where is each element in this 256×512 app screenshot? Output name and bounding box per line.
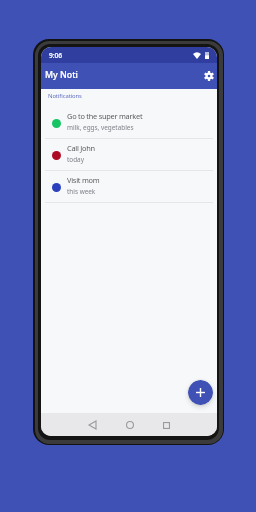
staticText: this week bbox=[67, 187, 96, 196]
button[interactable]: Go to the super market bbox=[41, 107, 217, 139]
staticText: Notifications bbox=[48, 92, 82, 100]
staticText: Call John bbox=[67, 143, 95, 153]
button[interactable]: Call John bbox=[41, 139, 217, 171]
staticText: My Noti bbox=[45, 69, 78, 81]
staticText: today bbox=[67, 155, 84, 164]
button[interactable]: Home bbox=[111, 415, 148, 435]
staticText: Visit mom bbox=[67, 175, 100, 185]
staticText: Go to the super market bbox=[67, 111, 143, 121]
staticText: 9:06 bbox=[49, 51, 63, 60]
button[interactable]: Recents bbox=[148, 415, 185, 435]
staticText: milk, eggs, vegetables bbox=[67, 123, 134, 132]
button[interactable]: Settings bbox=[201, 68, 217, 84]
button[interactable]: Back bbox=[74, 415, 111, 435]
button[interactable]: Visit mom bbox=[41, 171, 217, 203]
button[interactable]: Add note bbox=[188, 380, 213, 405]
